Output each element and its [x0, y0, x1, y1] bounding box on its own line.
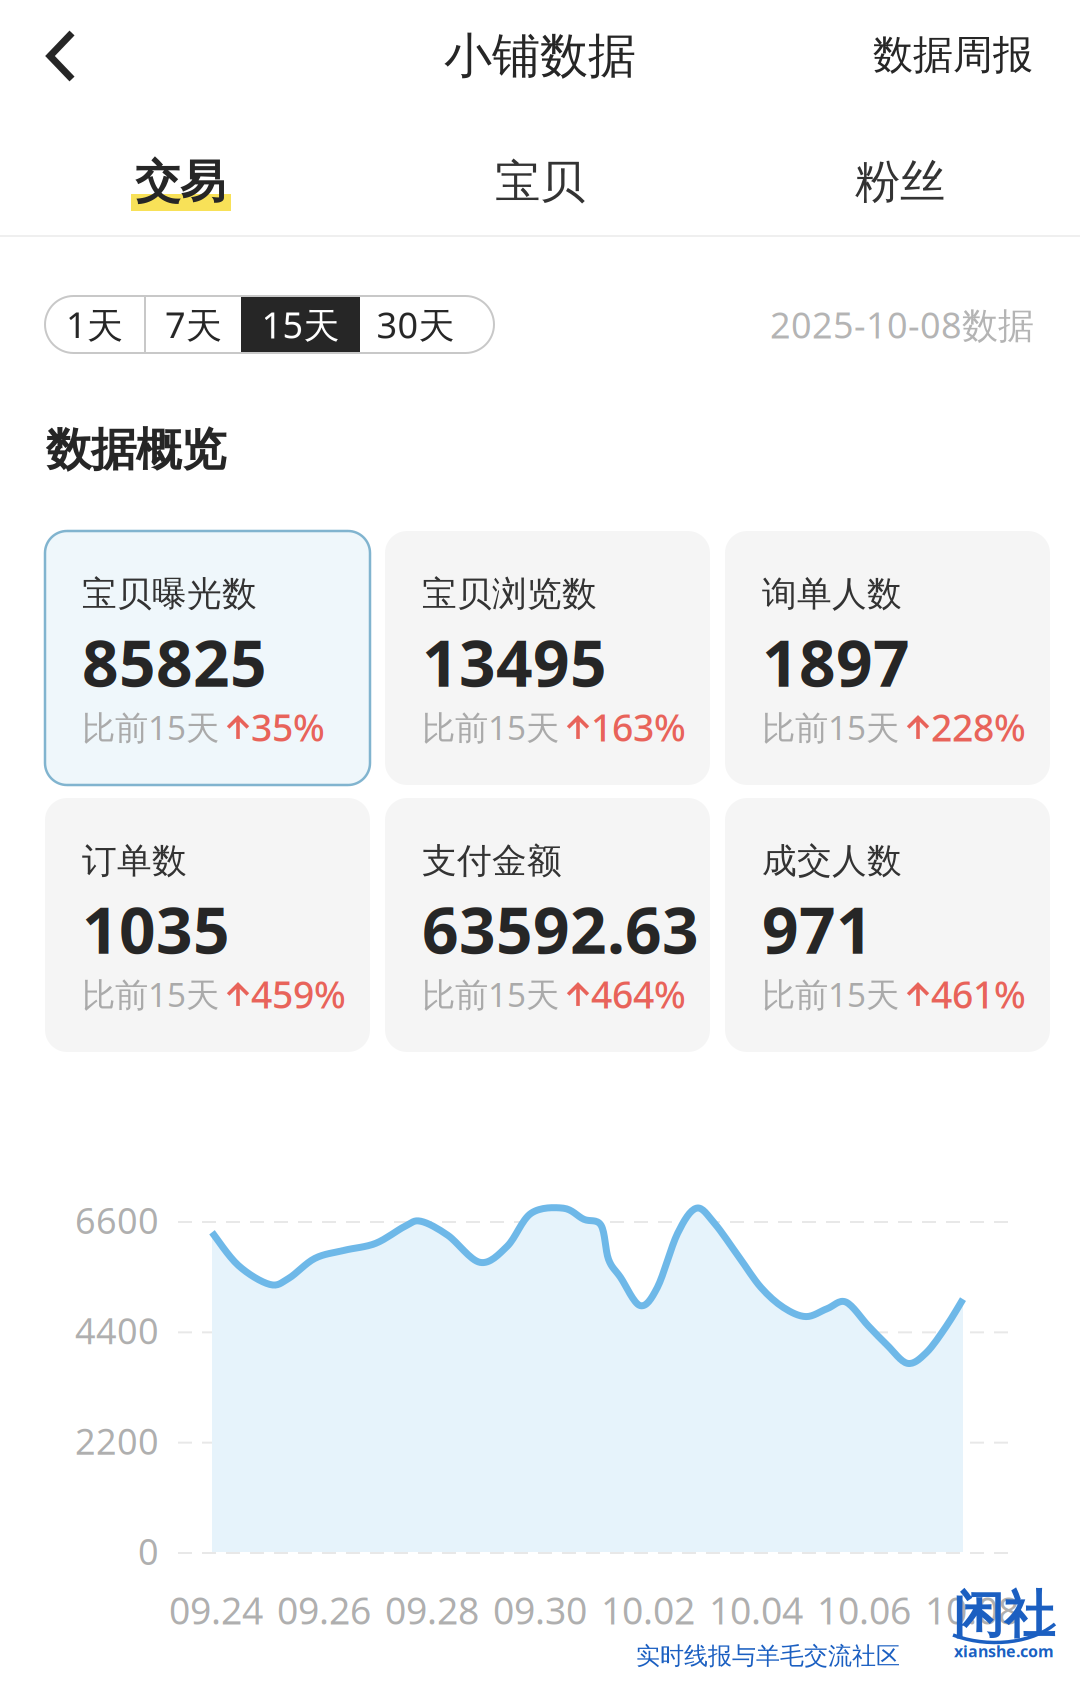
staticText: 粉丝	[855, 154, 945, 210]
staticText: 30天	[376, 301, 454, 348]
staticText: 459%	[251, 969, 346, 1019]
staticText: 宝贝曝光数	[82, 573, 257, 615]
staticText: 15天	[261, 301, 339, 348]
staticText: 宝贝	[495, 154, 585, 210]
button[interactable]: 数据周报	[838, 0, 1068, 110]
button[interactable]: 交易	[0, 127, 360, 237]
staticText: 小铺数据	[444, 26, 636, 85]
button[interactable]: 7天	[146, 296, 241, 353]
button[interactable]: 1天	[45, 296, 144, 353]
staticText: 09.26	[277, 1585, 371, 1635]
button[interactable]: Back	[6, 1, 116, 111]
staticText: 1035	[82, 886, 230, 971]
button[interactable]: 支付金额	[385, 798, 710, 1052]
button[interactable]: 粉丝	[720, 127, 1080, 237]
staticText: 比前15天	[82, 705, 219, 749]
staticText: 09.24	[169, 1585, 263, 1635]
button[interactable]: 宝贝	[360, 127, 720, 237]
staticText: 闲社	[953, 1584, 1055, 1646]
staticText: 支付金额	[422, 840, 562, 882]
staticText: 6600	[75, 1196, 159, 1244]
button[interactable]: 15天	[241, 296, 360, 353]
staticText: 1897	[762, 619, 910, 704]
staticText: 数据周报	[873, 30, 1033, 79]
staticText: 10.08	[925, 1585, 1019, 1635]
button[interactable]: 宝贝曝光数	[45, 531, 370, 785]
staticText: 10.06	[817, 1585, 911, 1635]
staticText: 35%	[251, 702, 325, 752]
staticText: 数据概览	[46, 422, 226, 478]
staticText: 7天	[165, 301, 222, 348]
staticText: 163%	[591, 702, 686, 752]
staticText: 交易	[135, 154, 225, 210]
staticText: 09.30	[493, 1585, 587, 1635]
staticText: 成交人数	[762, 840, 902, 882]
button[interactable]: 宝贝浏览数	[385, 531, 710, 785]
staticText: 63592.63	[422, 886, 699, 971]
staticText: 4400	[75, 1306, 159, 1354]
staticText: 比前15天	[762, 705, 899, 749]
button[interactable]: 询单人数	[725, 531, 1050, 785]
staticText: 85825	[82, 619, 267, 704]
staticText: xianshe.com	[954, 1640, 1054, 1662]
staticText: 461%	[931, 969, 1026, 1019]
staticText: 971	[762, 886, 873, 971]
button[interactable]: 订单数	[45, 798, 370, 1052]
staticText: 13495	[422, 619, 607, 704]
staticText: 10.02	[601, 1585, 695, 1635]
staticText: 比前15天	[422, 972, 559, 1016]
staticText: 464%	[591, 969, 686, 1019]
staticText: 宝贝浏览数	[422, 573, 597, 615]
staticText: 比前15天	[422, 705, 559, 749]
staticText: 2200	[75, 1417, 159, 1465]
staticText: 228%	[931, 702, 1026, 752]
staticText: 询单人数	[762, 573, 902, 615]
button[interactable]: 30天	[360, 296, 471, 353]
staticText: 比前15天	[82, 972, 219, 1016]
staticText: 09.28	[385, 1585, 479, 1635]
staticText: 0	[138, 1527, 159, 1575]
staticText: 订单数	[82, 840, 187, 882]
staticText: 1天	[66, 301, 123, 348]
staticText: 实时线报与羊毛交流社区	[636, 1641, 900, 1671]
staticText: 10.04	[709, 1585, 803, 1635]
staticText: 2025-10-08数据	[770, 301, 1034, 348]
button[interactable]: 成交人数	[725, 798, 1050, 1052]
staticText: 比前15天	[762, 972, 899, 1016]
